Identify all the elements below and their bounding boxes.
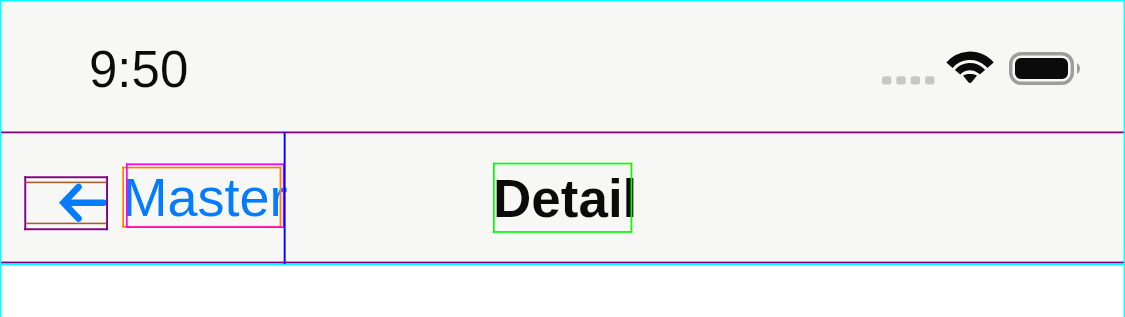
- staticText: 9:50: [89, 41, 189, 98]
- button[interactable]: Master: [122, 167, 281, 228]
- staticText: Detail: [493, 169, 638, 228]
- staticText: Master: [122, 167, 288, 227]
- button[interactable]: Back: [24, 176, 108, 230]
